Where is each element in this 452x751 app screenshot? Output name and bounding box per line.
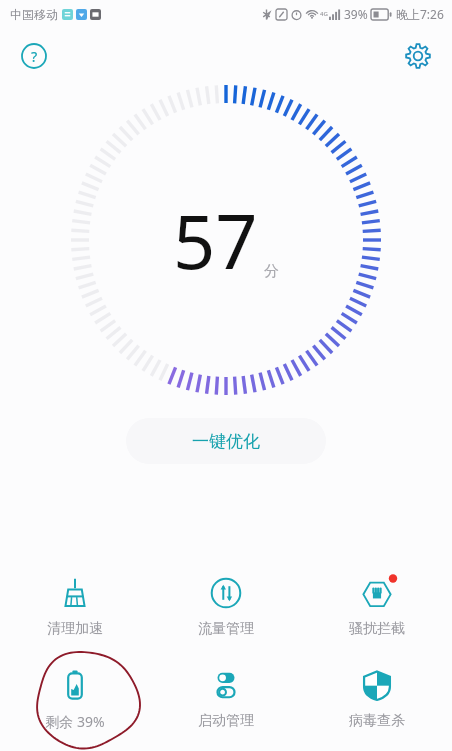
- staticText: 剩余 39%: [45, 712, 105, 731]
- button[interactable]: 流量管理: [150, 561, 301, 653]
- staticText: 启动管理: [198, 712, 254, 730]
- staticText: ?: [31, 47, 38, 66]
- staticText: 中国移动: [10, 7, 58, 22]
- staticText: 骚扰拦截: [349, 620, 405, 638]
- staticText: 一键优化: [192, 431, 260, 452]
- staticText: 病毒查杀: [349, 712, 405, 730]
- button[interactable]: Settings: [398, 36, 438, 76]
- button[interactable]: Help: [14, 36, 54, 76]
- staticText: 清理加速: [47, 620, 103, 638]
- staticText: 流量管理: [198, 620, 254, 638]
- button[interactable]: 清理加速: [0, 561, 150, 653]
- staticText: 4G: [320, 10, 328, 18]
- button[interactable]: 一键优化: [126, 418, 326, 464]
- staticText: 57: [173, 190, 258, 291]
- staticText: 晚上7:26: [396, 6, 444, 22]
- staticText: 39%: [344, 6, 368, 22]
- button[interactable]: 病毒查杀: [301, 653, 452, 745]
- staticText: 分: [264, 262, 279, 281]
- button[interactable]: 启动管理: [150, 653, 301, 745]
- button[interactable]: 骚扰拦截: [301, 561, 452, 653]
- button[interactable]: 剩余 39%: [0, 653, 150, 745]
